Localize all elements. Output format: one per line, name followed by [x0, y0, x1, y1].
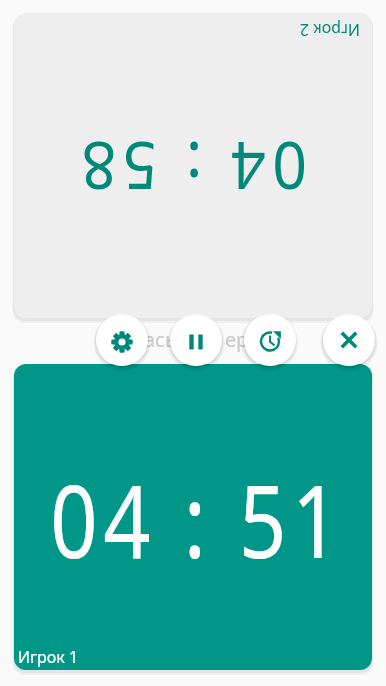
staticText: асы — [144, 326, 181, 353]
button[interactable]: 04 : 58 — [14, 13, 372, 318]
button[interactable] — [96, 314, 148, 366]
button[interactable]: 04 : 51 — [14, 364, 372, 670]
staticText: 04 : 51 — [50, 450, 344, 588]
staticText: Игрок 1 — [18, 646, 79, 668]
staticText: ер — [225, 326, 249, 353]
button[interactable] — [323, 314, 375, 366]
staticText: Игрок 2 — [299, 19, 360, 41]
staticText: 04 : 58 — [74, 123, 307, 213]
button[interactable] — [170, 314, 222, 366]
button[interactable] — [244, 314, 296, 366]
